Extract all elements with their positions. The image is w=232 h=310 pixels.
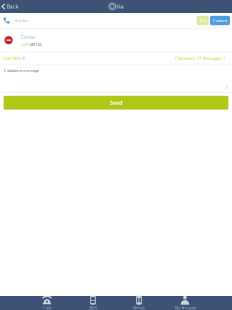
button[interactable]: Back <box>0 0 18 13</box>
staticText: Characters: 17, Messages: 1 <box>175 55 225 61</box>
staticText: +335 <box>21 42 29 47</box>
button[interactable]: Send <box>4 96 228 110</box>
staticText: ila <box>116 3 123 10</box>
staticText: Contacts <box>212 18 227 23</box>
button[interactable]: Remits <box>116 296 162 310</box>
staticText: Number <box>14 18 29 23</box>
staticText: Remits <box>133 305 145 310</box>
staticText: Cubalama message <box>4 68 39 73</box>
button[interactable]: Add <box>197 16 209 25</box>
staticText: SMS <box>89 305 97 310</box>
staticText: My Account <box>174 305 195 310</box>
staticText: Back <box>6 3 18 10</box>
staticText: Calls <box>42 305 51 310</box>
staticText: 0 <box>21 55 24 61</box>
button[interactable]: Remove Carlos <box>3 32 15 49</box>
button[interactable]: Contacts <box>210 16 230 25</box>
staticText: Carlos <box>21 33 36 40</box>
button[interactable]: My Account <box>162 296 208 310</box>
button[interactable]: Calls <box>24 296 70 310</box>
staticText: Free SMS: <box>3 55 21 61</box>
button[interactable]: SMS <box>70 296 116 310</box>
staticText: 581122 <box>29 42 42 47</box>
staticText: Add <box>199 18 206 23</box>
staticText: Send <box>110 99 122 106</box>
